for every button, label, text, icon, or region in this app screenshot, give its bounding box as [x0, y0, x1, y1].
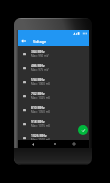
button[interactable]: Recent apps [67, 140, 81, 148]
staticText: Max: 1050 mV [31, 110, 51, 114]
staticText: 702 MHz [31, 91, 45, 95]
button[interactable]: Apply [78, 125, 88, 135]
button[interactable]: 594 MHz [18, 74, 89, 88]
button[interactable]: 918 MHz [18, 116, 89, 130]
staticText: 594 MHz [31, 77, 45, 81]
staticText: Max: 1000 mV [31, 82, 51, 86]
staticText: Max: 1075 mV [31, 124, 51, 128]
button[interactable]: Back [26, 140, 40, 148]
staticText: Max: 1025 mV [31, 96, 51, 100]
button[interactable]: 486 MHz [18, 60, 89, 74]
staticText: 918 MHz [31, 119, 45, 123]
button[interactable]: 702 MHz [18, 88, 89, 102]
button[interactable]: 384 MHz [18, 46, 89, 60]
button[interactable]: Navigate up [18, 36, 29, 46]
staticText: 384 MHz [31, 49, 45, 53]
staticText: Max: 975 mV [31, 68, 49, 72]
button[interactable]: Home [48, 140, 62, 148]
staticText: 1026 MHz [31, 133, 47, 137]
staticText: Max: 1100 mV [31, 138, 51, 142]
staticText: Max: 950 mV [31, 54, 49, 58]
staticText: 486 MHz [31, 63, 45, 67]
button[interactable]: 810 MHz [18, 102, 89, 116]
staticText: Voltage [33, 39, 47, 44]
button[interactable]: 1026 MHz [18, 130, 89, 144]
staticText: 810 MHz [31, 105, 45, 109]
